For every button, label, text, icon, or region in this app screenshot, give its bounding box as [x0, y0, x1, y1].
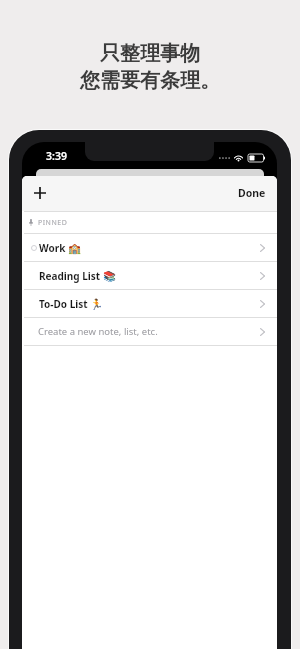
button[interactable]: Done	[227, 178, 277, 208]
button[interactable]: Work	[22, 234, 277, 261]
button[interactable]: New note	[26, 179, 54, 207]
staticText: PINNED	[38, 218, 68, 228]
staticText: To-Do List	[39, 297, 88, 311]
staticText: Work	[39, 241, 66, 255]
button[interactable]: To-Do List	[22, 290, 277, 317]
button[interactable]: Create a new note, list, etc.	[22, 318, 277, 345]
staticText: 📚	[103, 270, 117, 282]
staticText: 🏫	[68, 242, 82, 254]
staticText: Reading List	[39, 269, 101, 283]
staticText: Done	[238, 186, 266, 200]
staticText: 3:39	[46, 149, 67, 163]
staticText: Create a new note, list, etc.	[38, 325, 158, 338]
staticText: 只整理事物 您需要有条理。	[80, 41, 220, 93]
staticText: 🏃	[90, 298, 104, 310]
button[interactable]: Reading List	[22, 262, 277, 289]
